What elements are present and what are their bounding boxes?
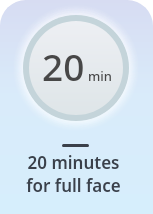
staticText: 20 minutes for full face bbox=[0, 151, 150, 214]
staticText: min bbox=[88, 67, 112, 85]
staticText: 20 bbox=[42, 41, 85, 91]
